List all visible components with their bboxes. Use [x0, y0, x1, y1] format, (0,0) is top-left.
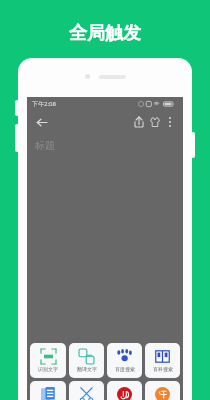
button[interactable]: 京东搜索: [107, 381, 142, 400]
button[interactable]: Back: [33, 114, 49, 130]
button[interactable]: 复制文字: [30, 381, 66, 400]
button[interactable]: Share: [131, 114, 147, 130]
staticText: 标题: [35, 139, 55, 152]
button[interactable]: More options: [163, 115, 177, 129]
button[interactable]: 翻译文字: [69, 343, 104, 378]
staticText: 百度搜索: [115, 366, 135, 372]
button[interactable]: Theme: [147, 114, 163, 130]
staticText: 识别文字: [38, 366, 58, 372]
button[interactable]: 屏幕截图: [69, 381, 104, 400]
staticText: 翻译文字: [77, 366, 97, 372]
button[interactable]: 淘宝搜索: [145, 381, 180, 400]
button[interactable]: 识别文字: [30, 343, 66, 378]
staticText: 全局触发: [69, 22, 141, 45]
staticText: 下午2:08: [32, 100, 56, 108]
button[interactable]: 百度搜索: [107, 343, 142, 378]
button[interactable]: 百科搜索: [145, 343, 180, 378]
staticText: 百科搜索: [153, 366, 173, 372]
